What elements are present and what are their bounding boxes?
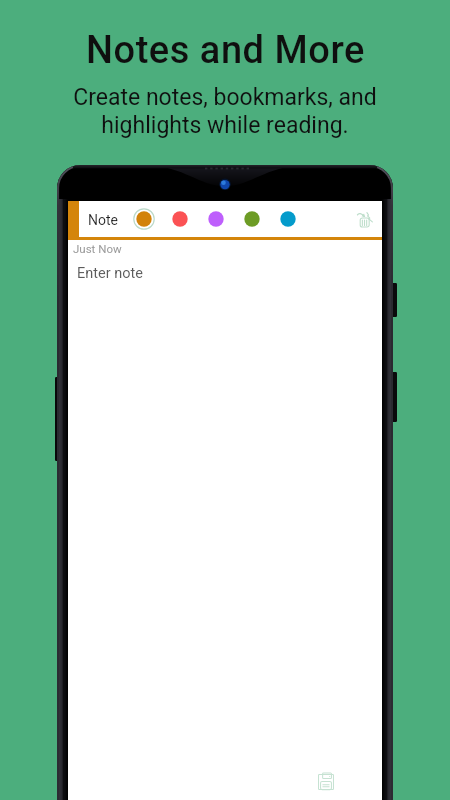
button[interactable]: Highlight colour [277,208,299,230]
staticText: Notes and More [86,28,365,73]
staticText: Just Now [73,242,122,255]
button[interactable]: Highlight colour [169,208,191,230]
staticText: Create notes, bookmarks, and highlights … [73,84,377,139]
button[interactable]: Highlight colour [241,208,263,230]
staticText: Note [88,212,118,228]
button[interactable]: Delete note [357,212,373,228]
button[interactable]: Highlight colour [133,208,155,230]
button[interactable]: Save note [318,774,334,790]
staticText: Enter note [77,265,143,282]
button[interactable]: Note [88,212,118,228]
button[interactable]: Highlight colour [205,208,227,230]
